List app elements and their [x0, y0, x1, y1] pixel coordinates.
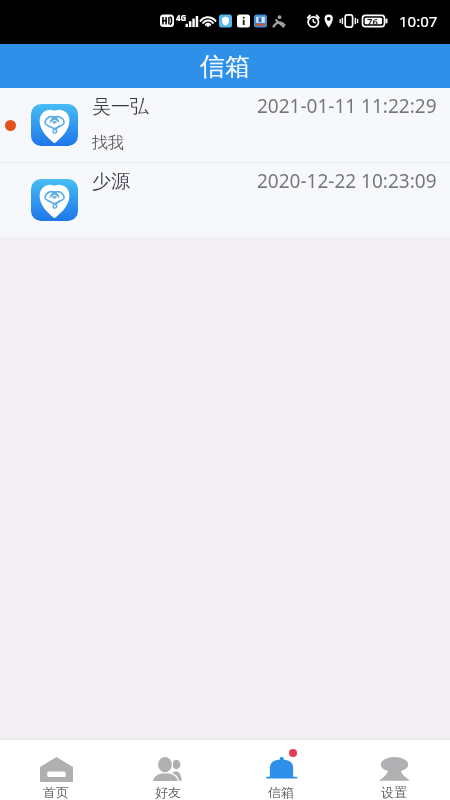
button[interactable]: 首页 [0, 740, 112, 800]
staticText: 2020-12-22 10:23:09 [257, 168, 437, 194]
button[interactable]: 设置 [337, 740, 450, 800]
staticText: 吴一弘 [92, 95, 149, 119]
staticText: 设置 [381, 784, 407, 800]
button[interactable]: 好友 [112, 740, 224, 800]
staticText: 信箱 [268, 784, 294, 800]
staticText: 76 [367, 15, 378, 28]
button[interactable]: 信箱 [224, 740, 337, 800]
staticText: 首页 [43, 784, 69, 800]
staticText: 找我 [92, 133, 124, 153]
staticText: 10:07 [399, 11, 438, 31]
staticText: 好友 [155, 784, 181, 800]
staticText: 4G [176, 12, 187, 23]
button[interactable]: 少源 [0, 163, 450, 237]
staticText: 少源 [92, 170, 130, 194]
button[interactable]: 吴一弘 [0, 88, 450, 162]
staticText: 信箱 [200, 51, 250, 82]
staticText: 2021-01-11 11:22:29 [257, 93, 437, 119]
